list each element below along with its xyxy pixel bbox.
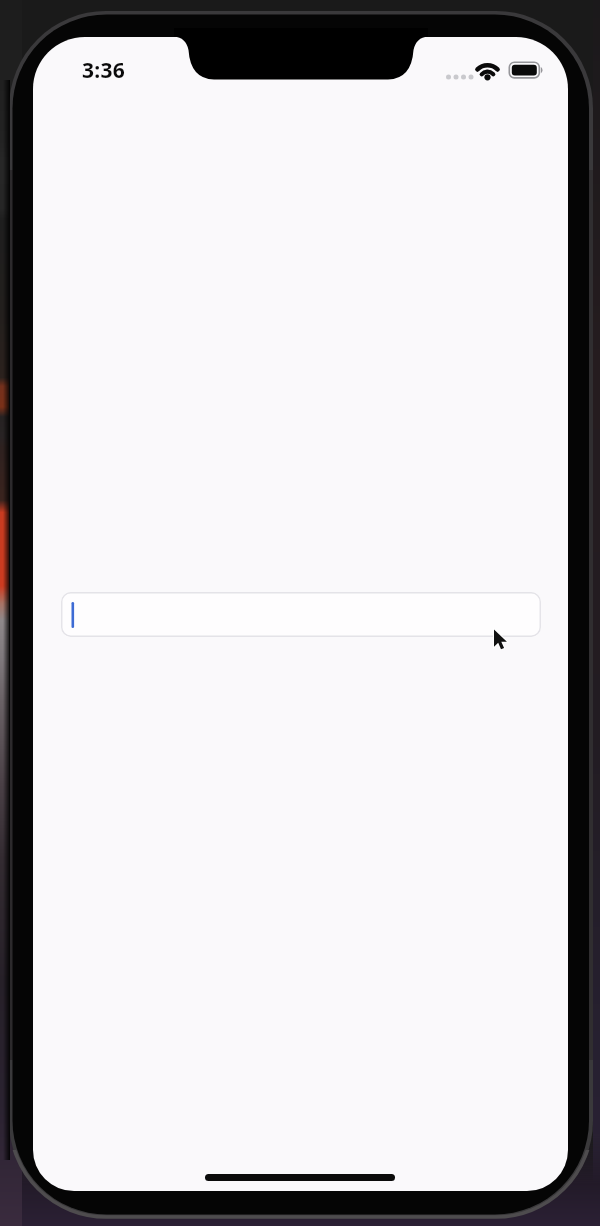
button[interactable] <box>61 592 541 637</box>
staticText: 3:36 <box>82 56 126 85</box>
